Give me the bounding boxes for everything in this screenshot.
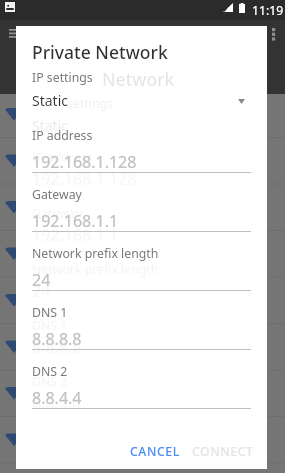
staticText: CANCEL (130, 443, 180, 460)
staticText: IP address (32, 149, 93, 166)
staticText: 24 (32, 280, 51, 302)
staticText: CONNECT (192, 443, 254, 460)
staticText: Network (102, 67, 175, 91)
button[interactable]: Navigation menu (9, 29, 25, 39)
staticText: DNS 1 (32, 317, 68, 334)
button[interactable]: Network prefix length (32, 245, 251, 291)
staticText: 8.8.8.8 (32, 328, 82, 350)
staticText: 8.8.8.8 (32, 336, 82, 358)
staticText: 8.8.4.4 (32, 392, 82, 414)
staticText: Private Network (32, 40, 168, 64)
staticText: DNS 1 (32, 304, 68, 321)
staticText: IP settings (32, 69, 93, 86)
button[interactable]: CONNECT (182, 437, 264, 465)
staticText: 24 (32, 269, 51, 291)
staticText: Network prefix length (32, 261, 159, 278)
staticText: 11:19 (252, 2, 284, 19)
staticText: Static (32, 116, 68, 135)
button[interactable]: DNS 1 (32, 304, 251, 350)
staticText: 192.168.1.128 (32, 151, 137, 173)
button[interactable]: DNS 2 (32, 363, 251, 409)
button[interactable]: IP settings dropdown (231, 88, 251, 108)
staticText: Gateway (32, 186, 82, 203)
staticText: Gateway (32, 205, 82, 222)
staticText: 192.168.1.1 (32, 224, 119, 246)
staticText: Network prefix length (32, 245, 159, 262)
staticText: DNS 2 (32, 373, 68, 390)
button[interactable]: CANCEL (120, 437, 190, 465)
staticText: 192.168.1.128 (32, 168, 137, 190)
staticText: 192.168.1.1 (32, 210, 119, 232)
button[interactable]: IP address (32, 127, 251, 173)
button[interactable]: Gateway (32, 186, 251, 232)
staticText: IP address (32, 127, 93, 144)
staticText: settings (67, 95, 113, 112)
staticText: Static (32, 91, 68, 110)
staticText: DNS 2 (32, 363, 68, 380)
button[interactable]: More options (272, 28, 276, 42)
staticText: 8.8.4.4 (32, 387, 82, 409)
